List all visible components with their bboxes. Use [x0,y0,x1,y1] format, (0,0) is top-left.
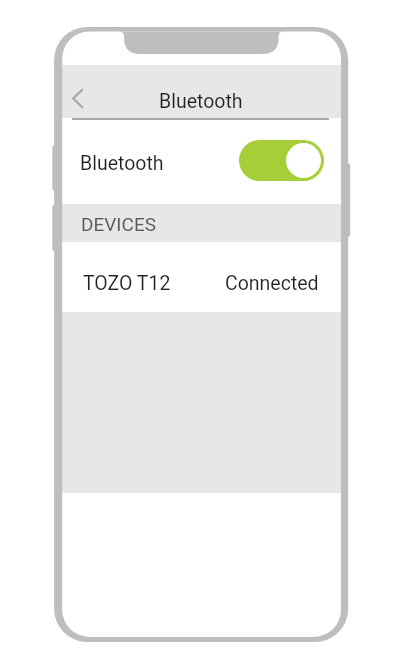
staticText: TOZO T12 [83,272,171,295]
button[interactable]: Back [64,84,92,112]
staticText: Connected [225,272,319,295]
staticText: Bluetooth [159,90,243,113]
staticText: Bluetooth [80,152,164,175]
button[interactable]: TOZO T12 [62,242,341,312]
button[interactable]: Bluetooth [62,120,341,204]
button[interactable]: Bluetooth on [239,140,324,181]
staticText: DEVICES [81,213,156,235]
